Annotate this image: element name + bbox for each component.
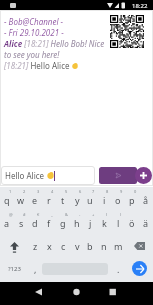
staticText: w: [17, 194, 25, 206]
staticText: to see you here!: [4, 49, 60, 60]
staticText: u: [87, 194, 93, 206]
staticText: - Bob@Channel -: [4, 16, 64, 27]
button[interactable]: a: [0, 212, 14, 234]
staticText: .: [117, 263, 120, 275]
staticText: j: [89, 217, 92, 229]
staticText: z: [33, 240, 38, 252]
staticText: ä: [143, 217, 149, 229]
staticText: s: [19, 217, 24, 229]
button[interactable]: i: [97, 189, 111, 211]
button[interactable]: s: [14, 212, 28, 234]
staticText: y: [75, 194, 80, 206]
button[interactable]: [135, 167, 152, 184]
button[interactable]: t: [56, 189, 70, 211]
button[interactable]: [99, 167, 137, 184]
staticText: h: [74, 217, 80, 229]
staticText: 2: [23, 189, 26, 194]
staticText: d: [32, 217, 38, 229]
button[interactable]: ?123: [0, 258, 28, 280]
staticText: x: [47, 240, 52, 252]
staticText: i: [103, 194, 106, 206]
staticText: e: [32, 194, 38, 206]
button[interactable]: g: [56, 212, 70, 234]
staticText: 8: [106, 189, 109, 194]
staticText: ?123: [8, 265, 21, 273]
button[interactable]: b: [83, 235, 97, 257]
staticText: p: [129, 194, 135, 206]
button[interactable]: .: [111, 258, 125, 280]
button[interactable]: Hello Alice: [1, 166, 95, 185]
staticText: ,: [34, 263, 37, 275]
button[interactable]: r: [42, 189, 56, 211]
staticText: 5: [65, 189, 68, 194]
button[interactable]: u: [83, 189, 97, 211]
button[interactable]: n: [97, 235, 111, 257]
button[interactable]: [102, 282, 153, 305]
staticText: 0: [134, 189, 137, 194]
staticText: 1: [9, 189, 12, 194]
staticText: Hello Alice: [5, 170, 47, 181]
staticText: r: [47, 194, 51, 206]
staticText: 3: [37, 189, 40, 194]
staticText: m: [114, 240, 123, 252]
staticText: å: [143, 194, 149, 206]
staticText: t: [61, 194, 65, 206]
staticText: +: [92, 212, 95, 217]
staticText: ): [120, 212, 122, 217]
staticText: n: [101, 240, 107, 252]
staticText: 6: [79, 189, 82, 194]
staticText: 4: [51, 189, 54, 194]
staticText: [18:21] Hello Alice: [4, 60, 72, 71]
staticText: k: [102, 217, 107, 229]
button[interactable]: k: [97, 212, 111, 234]
button[interactable]: f: [42, 212, 56, 234]
button[interactable]: v: [70, 235, 84, 257]
staticText: q: [4, 194, 10, 206]
button[interactable]: h: [70, 212, 84, 234]
staticText: @: [9, 212, 13, 217]
staticText: f: [47, 217, 51, 229]
button[interactable]: z: [28, 235, 42, 257]
staticText: 9: [120, 189, 123, 194]
button[interactable]: p: [125, 189, 139, 211]
button[interactable]: j: [83, 212, 97, 234]
button[interactable]: [51, 282, 102, 305]
button[interactable]: d: [28, 212, 42, 234]
staticText: #: [23, 212, 26, 217]
button[interactable]: l: [111, 212, 125, 234]
button[interactable]: c: [56, 235, 70, 257]
button[interactable]: [126, 235, 153, 257]
button[interactable]: [0, 282, 51, 305]
staticText: Alice [18:21] Hello Bob! Nice: [4, 38, 105, 49]
staticText: -: [79, 212, 81, 217]
button[interactable]: m: [111, 235, 125, 257]
staticText: - Fri 29.10.2021 -: [4, 27, 64, 38]
staticText: c: [61, 240, 66, 252]
button[interactable]: å: [139, 189, 153, 211]
button[interactable]: e: [28, 189, 42, 211]
button[interactable]: o: [111, 189, 125, 211]
button[interactable]: x: [42, 235, 56, 257]
staticText: 7: [92, 189, 95, 194]
staticText: _: [51, 212, 53, 217]
staticText: &: [65, 212, 68, 217]
button[interactable]: ä: [139, 212, 153, 234]
button[interactable]: ö: [125, 212, 139, 234]
staticText: v: [75, 240, 80, 252]
staticText: a: [4, 217, 10, 229]
staticText: g: [60, 217, 66, 229]
button[interactable]: ,: [28, 258, 42, 280]
button[interactable]: y: [70, 189, 84, 211]
staticText: (: [106, 212, 108, 217]
staticText: €: [37, 212, 40, 217]
staticText: ö: [129, 217, 135, 229]
staticText: o: [115, 194, 121, 206]
button[interactable]: [0, 235, 28, 257]
button[interactable]: w: [14, 189, 28, 211]
staticText: b: [87, 240, 93, 252]
button[interactable]: [132, 261, 147, 276]
staticText: l: [117, 217, 120, 229]
button[interactable]: q: [0, 189, 14, 211]
staticText: 18:22: [132, 2, 148, 10]
